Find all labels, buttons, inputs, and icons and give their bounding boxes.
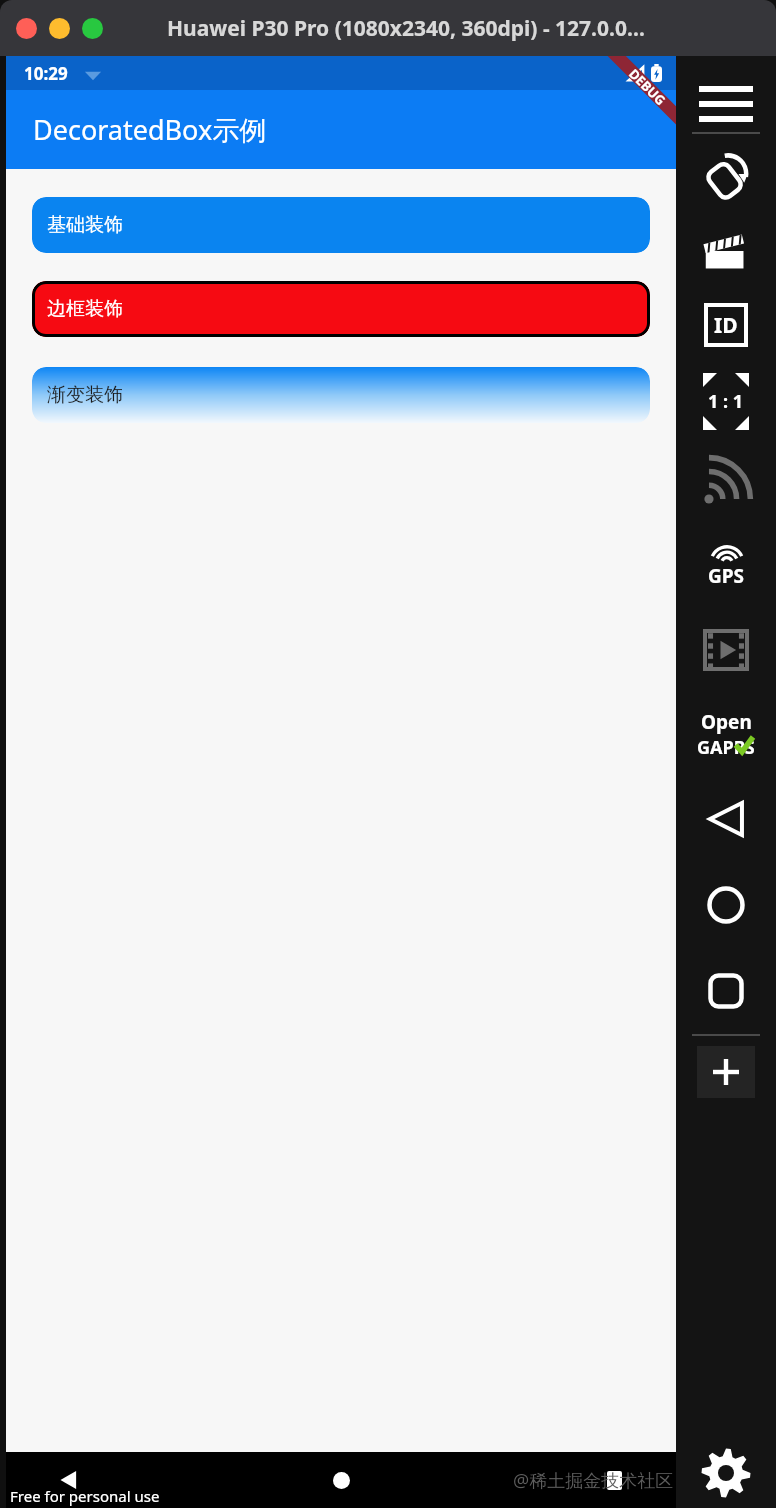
button[interactable]: Back: [676, 776, 776, 862]
staticText: @稀土掘金技术社区: [513, 1468, 674, 1493]
button[interactable]: Home: [676, 862, 776, 948]
button[interactable]: Rotate: [676, 140, 776, 214]
button[interactable]: Settings: [676, 1438, 776, 1508]
staticText: Huawei P30 Pro (1080x2340, 360dpi) - 127…: [167, 14, 645, 43]
button[interactable]: Record screen: [676, 214, 776, 288]
staticText: Free for personal use: [10, 1486, 160, 1506]
staticText: DecoratedBox示例: [33, 111, 267, 148]
button[interactable]: Open GApps: [676, 692, 776, 776]
button[interactable]: 边框装饰: [32, 281, 650, 337]
staticText: DEBUG: [625, 65, 670, 109]
button[interactable]: Menu: [676, 76, 776, 132]
button[interactable]: Add: [697, 1046, 755, 1098]
button[interactable]: 基础装饰: [32, 197, 650, 253]
button[interactable]: GPS: [676, 524, 776, 608]
staticText: ID: [714, 311, 738, 340]
staticText: 边框装饰: [47, 297, 123, 321]
button[interactable]: Camera: [676, 608, 776, 692]
button[interactable]: Device ID: [676, 288, 776, 362]
button[interactable]: Recents: [676, 948, 776, 1034]
button[interactable]: Cellular: [676, 440, 776, 524]
button[interactable]: Back: [40, 1452, 96, 1508]
button[interactable]: 渐变装饰: [32, 367, 650, 423]
staticText: 10:29: [24, 62, 68, 85]
button[interactable]: Zoom 1 to 1: [676, 362, 776, 440]
staticText: 基础装饰: [47, 213, 123, 237]
staticText: 1 : 1: [708, 389, 744, 414]
button[interactable]: Recents: [586, 1452, 642, 1508]
button[interactable]: Home: [313, 1452, 369, 1508]
staticText: GPS: [708, 563, 745, 589]
staticText: GAPPS: [697, 735, 755, 760]
staticText: Open: [701, 709, 752, 735]
staticText: 渐变装饰: [47, 383, 123, 407]
